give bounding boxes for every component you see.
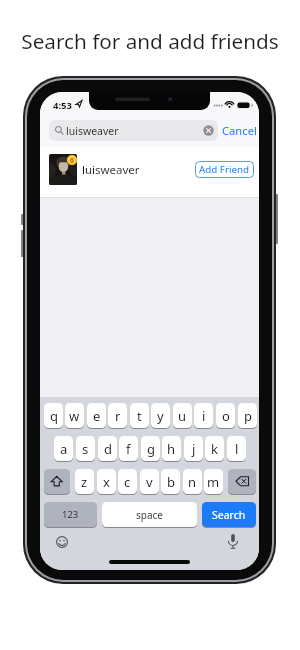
button[interactable]: x xyxy=(97,469,116,495)
staticText: space xyxy=(136,508,163,522)
staticText: luisweaver xyxy=(66,124,119,138)
staticText: j xyxy=(192,440,196,458)
button[interactable]: a xyxy=(54,436,73,462)
button[interactable]: t xyxy=(130,403,149,429)
button[interactable]: k xyxy=(205,436,224,462)
button[interactable]: g xyxy=(141,436,160,462)
staticText: Search for and add friends xyxy=(0,27,300,55)
button[interactable]: l xyxy=(227,436,246,462)
button[interactable]: i xyxy=(194,403,213,429)
button[interactable]: b xyxy=(161,469,180,495)
button[interactable]: j xyxy=(184,436,203,462)
staticText: a xyxy=(60,440,68,458)
staticText: Search xyxy=(212,508,246,522)
button[interactable]: v xyxy=(140,469,159,495)
staticText: n xyxy=(188,473,197,491)
staticText: s xyxy=(82,440,89,458)
staticText: y xyxy=(157,407,164,425)
staticText: u xyxy=(178,407,187,425)
staticText: f xyxy=(126,440,131,458)
button[interactable]: Add Friend xyxy=(195,161,254,178)
staticText: l xyxy=(235,440,239,458)
button[interactable]: e xyxy=(87,403,106,429)
staticText: c xyxy=(124,473,131,491)
button[interactable]: m xyxy=(204,469,223,495)
staticText: z xyxy=(81,473,88,491)
button[interactable] xyxy=(228,469,256,495)
button[interactable]: w xyxy=(65,403,84,429)
button[interactable]: f xyxy=(119,436,138,462)
button[interactable]: p xyxy=(238,403,257,429)
button[interactable]: 123 xyxy=(44,502,97,528)
button[interactable]: n xyxy=(183,469,202,495)
button[interactable]: d xyxy=(98,436,117,462)
button[interactable] xyxy=(55,535,69,549)
button[interactable]: u xyxy=(173,403,192,429)
staticText: b xyxy=(167,473,175,491)
staticText: e xyxy=(93,407,101,425)
button[interactable]: q xyxy=(44,403,63,429)
staticText: luisweaver xyxy=(82,162,140,178)
button[interactable] xyxy=(44,469,70,495)
staticText: h xyxy=(167,440,176,458)
staticText: g xyxy=(147,440,155,458)
button[interactable]: y xyxy=(151,403,170,429)
button[interactable]: h xyxy=(162,436,181,462)
staticText: q xyxy=(50,407,58,425)
button[interactable]: o xyxy=(216,403,235,429)
staticText: m xyxy=(207,473,220,491)
button[interactable]: r xyxy=(108,403,127,429)
staticText: Cancel xyxy=(222,123,257,138)
staticText: k xyxy=(211,440,218,458)
staticText: w xyxy=(69,407,80,425)
staticText: d xyxy=(104,440,112,458)
button[interactable]: Search xyxy=(202,502,256,528)
button[interactable]: Cancel xyxy=(222,123,257,138)
staticText: r xyxy=(115,407,121,425)
button[interactable]: z xyxy=(75,469,94,495)
staticText: o xyxy=(222,407,230,425)
button[interactable] xyxy=(40,141,259,196)
button[interactable]: space xyxy=(102,502,197,528)
staticText: Add Friend xyxy=(199,163,250,176)
staticText: 123 xyxy=(62,508,79,521)
staticText: x xyxy=(103,473,110,491)
button[interactable] xyxy=(226,533,240,550)
button[interactable]: luisweaver xyxy=(49,120,218,141)
staticText: 4:53 xyxy=(53,99,72,112)
button[interactable]: s xyxy=(76,436,95,462)
button[interactable]: c xyxy=(118,469,137,495)
button[interactable] xyxy=(203,125,214,136)
staticText: v xyxy=(146,473,153,491)
staticText: i xyxy=(202,407,206,425)
staticText: t xyxy=(137,407,142,425)
staticText: 6 xyxy=(70,156,74,165)
staticText: p xyxy=(244,407,252,425)
